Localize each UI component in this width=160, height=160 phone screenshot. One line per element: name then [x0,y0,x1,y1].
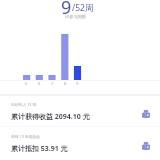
staticText: 9 [61,0,72,20]
button[interactable]: 获得 12 条奖励金 [0,129,160,159]
staticText: 8 [64,81,67,87]
staticText: 5 [25,81,28,87]
staticText: 已参与周数 [65,14,86,19]
staticText: 累计获得收益 2094.10 元 [11,112,90,122]
other: 查看奖励金明细 [141,141,151,151]
staticText: 9 [76,81,79,87]
staticText: 7 [51,81,54,87]
staticText: 获得 12 条奖励金 [11,134,41,139]
staticText: 已经投入 12 笔 [11,102,37,107]
staticText: /52周 [72,2,94,14]
button[interactable]: 已经投入 12 笔 [0,97,160,127]
other: 查看投入明细 [141,109,151,119]
staticText: 累计抵扣 53.91 元 [11,144,68,154]
staticText: 6 [38,81,41,87]
